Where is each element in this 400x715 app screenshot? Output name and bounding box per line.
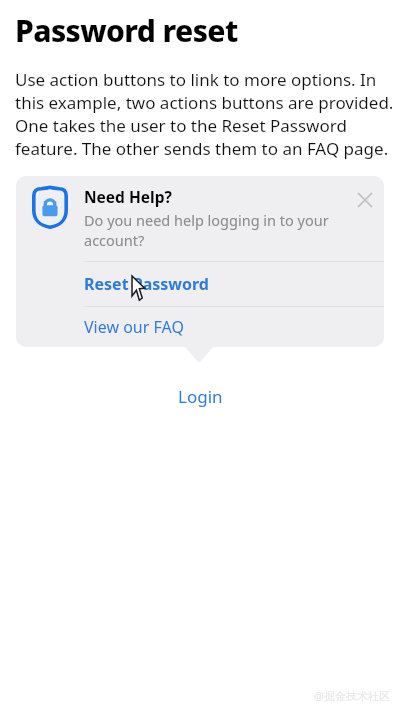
staticText: Login bbox=[178, 385, 223, 408]
button[interactable]: Reset Password bbox=[16, 262, 384, 306]
staticText: View our FAQ bbox=[84, 316, 184, 338]
button[interactable]: Login bbox=[168, 382, 233, 411]
staticText: Do you need help logging in to your acco… bbox=[84, 210, 351, 250]
staticText: Need Help? bbox=[84, 186, 172, 207]
button[interactable]: View our FAQ bbox=[16, 307, 384, 347]
staticText: Password reset bbox=[15, 10, 238, 51]
button[interactable]: Close bbox=[351, 186, 379, 214]
staticText: Reset Password bbox=[84, 273, 209, 295]
staticText: @掘金技术社区 bbox=[314, 688, 390, 703]
staticText: Use action buttons to link to more optio… bbox=[15, 68, 394, 160]
